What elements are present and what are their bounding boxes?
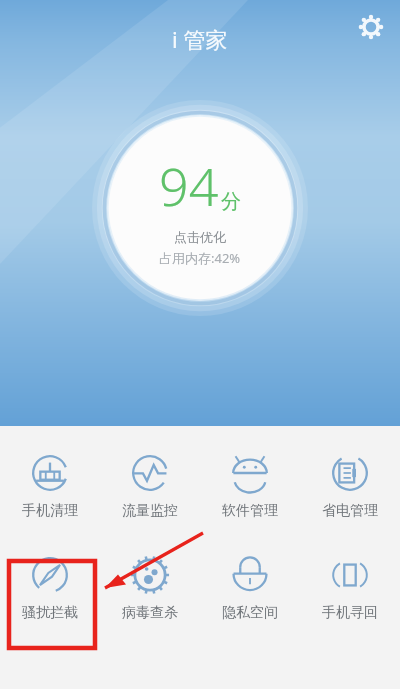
staticText: 点击优化	[174, 229, 226, 245]
staticText: 手机清理	[22, 502, 78, 520]
staticText: i 管家	[172, 24, 228, 54]
button[interactable]: 软件管理	[200, 450, 300, 522]
button[interactable]: 手机清理	[0, 450, 100, 522]
button[interactable]: 病毒查杀	[100, 552, 200, 624]
button[interactable]: 骚扰拦截	[0, 552, 100, 624]
staticText: 手机寻回	[322, 604, 378, 622]
button[interactable]: 94	[92, 100, 308, 316]
button[interactable]: Settings	[354, 10, 388, 44]
button[interactable]: 流量监控	[100, 450, 200, 522]
staticText: 病毒查杀	[122, 604, 178, 622]
staticText: 94	[159, 150, 219, 221]
staticText: 流量监控	[122, 502, 178, 520]
staticText: 骚扰拦截	[22, 604, 78, 622]
staticText: 占用内存:42%	[159, 249, 241, 267]
button[interactable]: 隐私空间	[200, 552, 300, 624]
staticText: 分	[221, 189, 241, 214]
button[interactable]: 手机寻回	[300, 552, 400, 624]
staticText: 省电管理	[322, 502, 378, 520]
staticText: 软件管理	[222, 502, 278, 520]
button[interactable]: 省电管理	[300, 450, 400, 522]
staticText: 隐私空间	[222, 604, 278, 622]
